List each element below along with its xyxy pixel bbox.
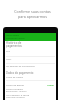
staticText: Confirmar contas xyxy=(6,37,25,40)
staticText: Ao transferir a conta xyxy=(6,93,29,96)
staticText: Histórico de xyxy=(6,41,22,45)
staticText: Valor total da fatura xyxy=(6,96,25,99)
button[interactable] xyxy=(5,33,56,41)
staticText: Conta do debito xyxy=(6,83,25,86)
staticText: CPF xyxy=(6,50,10,53)
staticText: Ver detalhes da transferencia xyxy=(6,65,35,68)
button[interactable]: Alterar xyxy=(47,84,54,87)
staticText: Valor xyxy=(6,58,12,61)
staticText: Confirme suas contas xyxy=(14,9,51,14)
staticText: Meus dados xyxy=(6,34,20,37)
staticText: Banco Brasil - ag 0001 xyxy=(6,90,27,93)
staticText: Conta de credito xyxy=(6,76,23,79)
staticText: Dados do pagamento xyxy=(6,71,34,75)
staticText: Conta corrente xyxy=(6,87,23,90)
staticText: para aprovarmos xyxy=(18,14,47,19)
staticText: pagamentos xyxy=(6,44,22,48)
